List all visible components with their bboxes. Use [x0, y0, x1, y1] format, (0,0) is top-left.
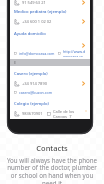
button[interactable]: Colegio (ejemplo)	[10, 99, 90, 118]
other: Call	[14, 81, 19, 86]
other: Open contact	[81, 19, 86, 24]
button[interactable]: Call	[10, 0, 90, 7]
button[interactable]: Call	[10, 79, 90, 88]
other: Open contact	[81, 43, 86, 48]
button[interactable]: Call	[10, 17, 90, 26]
staticText: info@domocasa.com	[19, 51, 55, 56]
staticText: E	[14, 60, 17, 65]
other: Call	[14, 0, 19, 5]
staticText: Contacts	[36, 143, 68, 153]
other: Open contact	[81, 0, 86, 5]
staticText: +34 914 7890	[22, 81, 47, 86]
staticText: You will always have the phone number of…	[4, 156, 100, 184]
button[interactable]: casero@buzon.com	[10, 88, 90, 96]
staticText: casero@buzon.com	[19, 90, 53, 95]
staticText: Medico pediatra (ejemplo)	[14, 9, 67, 15]
staticText: http://www.domocasa.com/age	[63, 49, 86, 57]
other: Call	[14, 111, 19, 116]
button[interactable]: info@domocasa.com	[10, 49, 90, 57]
other: Open contact	[81, 81, 86, 86]
staticText: Calle de los Cangos, 7	[53, 109, 86, 118]
button[interactable]: Call	[10, 109, 90, 118]
staticText: 91 549 63 21	[22, 0, 46, 5]
button[interactable]: Medico pediatra (ejemplo)	[10, 7, 90, 28]
other: Call	[14, 19, 19, 24]
staticText: 983670901	[22, 111, 43, 116]
staticText: Casero (ejemplo)	[14, 71, 48, 77]
staticText: Colegio (ejemplo)	[14, 101, 49, 107]
button[interactable]: Open contact	[10, 42, 90, 49]
staticText: +34 600 1 02 02	[22, 19, 52, 24]
staticText: Ayuda domicilio	[14, 31, 46, 37]
button[interactable]: Casero (ejemplo)	[10, 69, 90, 88]
